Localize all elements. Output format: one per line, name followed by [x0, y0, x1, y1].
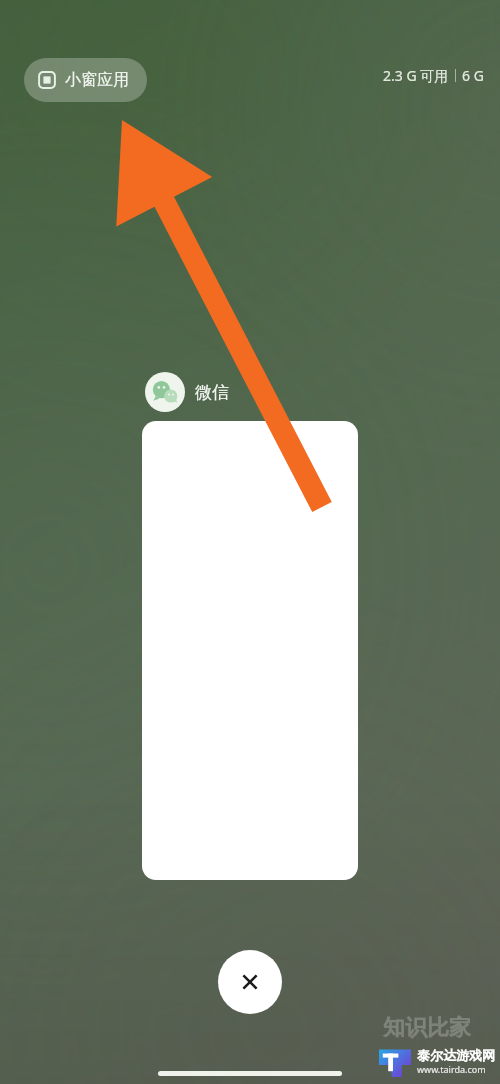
staticText: 6 G: [462, 66, 484, 85]
staticText: 2.3 G 可用: [383, 66, 449, 85]
staticText: 知识比家: [383, 1014, 471, 1042]
staticText: www.tairda.com: [417, 1063, 486, 1075]
button[interactable]: [142, 421, 358, 880]
staticText: 微信: [195, 382, 229, 403]
button[interactable]: 微信: [145, 372, 229, 412]
staticText: 泰尔达游戏网: [417, 1047, 495, 1063]
button[interactable]: 小窗应用: [24, 58, 147, 102]
button[interactable]: 关闭: [218, 950, 282, 1014]
staticText: 小窗应用: [65, 70, 129, 90]
